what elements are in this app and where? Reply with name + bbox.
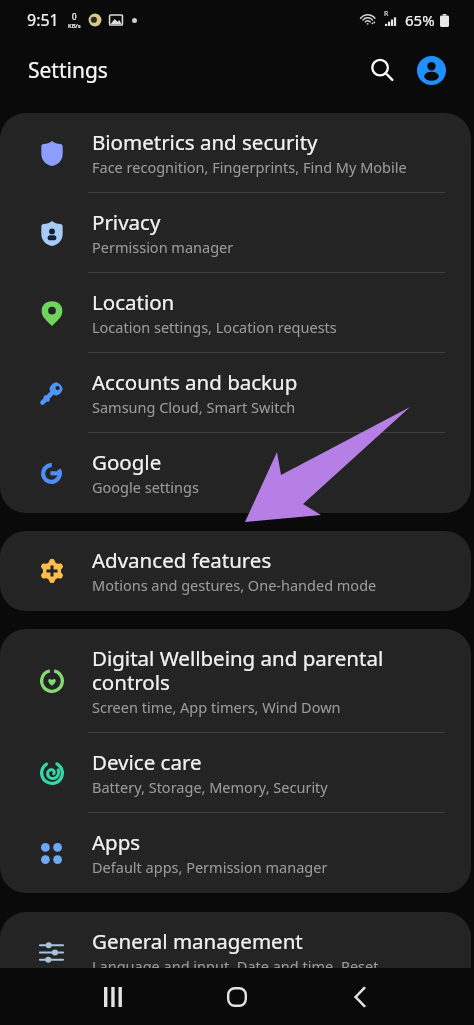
staticText: Location <box>92 288 175 316</box>
button[interactable]: Location <box>0 273 471 353</box>
staticText: Language and input, Date and time, Reset <box>92 956 379 976</box>
staticText: Apps <box>92 828 141 856</box>
staticText: Screen time, App timers, Wind Down <box>92 697 341 717</box>
staticText: Motions and gestures, One-handed mode <box>92 575 377 595</box>
staticText: 9:51 <box>27 9 59 31</box>
button[interactable]: Advanced features <box>0 531 471 611</box>
button[interactable]: Search <box>363 51 401 89</box>
staticText: Advanced features <box>92 546 272 574</box>
button[interactable]: Device care <box>0 733 471 813</box>
staticText: Digital Wellbeing and parental controls <box>92 644 447 696</box>
button[interactable]: General management <box>0 912 471 992</box>
button[interactable]: Biometrics and security <box>0 113 471 193</box>
staticText: Settings <box>28 56 108 85</box>
staticText: Location settings, Location requests <box>92 317 337 337</box>
staticText: Default apps, Permission manager <box>92 857 328 877</box>
button[interactable]: Recents <box>87 971 139 1023</box>
staticText: Device care <box>92 748 202 776</box>
button[interactable]: Digital Wellbeing and parental controls <box>0 629 471 733</box>
staticText: Accounts and backup <box>92 368 298 396</box>
staticText: R <box>384 9 389 19</box>
staticText: Samsung Cloud, Smart Switch <box>92 397 296 417</box>
button[interactable]: Privacy <box>0 193 471 273</box>
staticText: Google <box>92 448 162 476</box>
button[interactable]: Accounts and backup <box>0 353 471 433</box>
button[interactable]: Home <box>211 971 263 1023</box>
staticText: Biometrics and security <box>92 128 318 156</box>
staticText: Privacy <box>92 208 161 236</box>
button[interactable]: Back <box>334 971 386 1023</box>
staticText: Face recognition, Fingerprints, Find My … <box>92 157 407 177</box>
staticText: 0 <box>72 11 77 22</box>
button[interactable]: Google <box>0 433 471 513</box>
button[interactable]: Account <box>417 56 446 85</box>
staticText: KB/s <box>68 22 81 30</box>
staticText: General management <box>92 927 303 955</box>
staticText: Google settings <box>92 477 199 497</box>
staticText: Permission manager <box>92 237 234 257</box>
button[interactable]: Apps <box>0 813 471 893</box>
staticText: Battery, Storage, Memory, Security <box>92 777 328 797</box>
staticText: 65% <box>405 10 435 30</box>
